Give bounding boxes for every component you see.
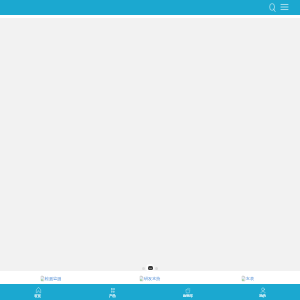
button[interactable]: 我的 bbox=[225, 284, 300, 300]
button[interactable]: Search bbox=[269, 3, 277, 12]
staticText: 检测监测 bbox=[45, 276, 62, 281]
staticText: 首页 bbox=[34, 294, 41, 298]
button[interactable]: 产品 bbox=[75, 284, 150, 300]
button[interactable]: 购物车 bbox=[150, 284, 225, 300]
button[interactable]: 检测监测 bbox=[41, 276, 62, 281]
button[interactable]: 研发支持 bbox=[140, 276, 161, 281]
button[interactable]: Menu bbox=[281, 4, 288, 10]
staticText: 研发支持 bbox=[144, 276, 161, 281]
staticText: 产品 bbox=[109, 294, 116, 298]
staticText: 购物车 bbox=[183, 294, 193, 298]
button[interactable]: 首页 bbox=[0, 284, 75, 300]
staticText: 我的 bbox=[259, 294, 266, 298]
button[interactable]: 支表 bbox=[242, 276, 255, 281]
staticText: 支表 bbox=[246, 276, 255, 281]
